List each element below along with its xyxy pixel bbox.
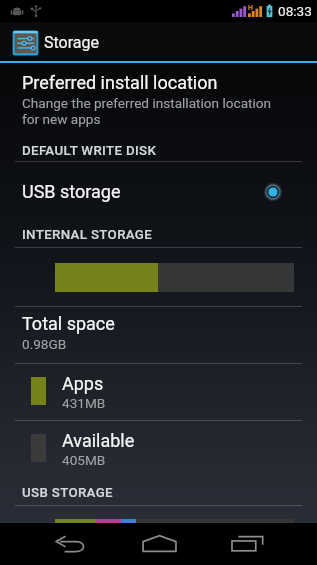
staticText: INTERNAL STORAGE: [22, 227, 153, 243]
staticText: Preferred install location: [22, 72, 218, 93]
button[interactable]: Storage: [0, 22, 317, 61]
button[interactable]: Back: [26, 523, 116, 565]
button[interactable]: Total space: [0, 306, 317, 364]
staticText: 08:33: [278, 3, 312, 19]
staticText: 405MB: [62, 452, 106, 468]
staticText: DEFAULT WRITE DISK: [22, 143, 157, 159]
button[interactable]: Apps: [0, 364, 317, 420]
button[interactable]: Recent apps: [203, 523, 293, 565]
staticText: Change the preferred installation locati…: [22, 95, 272, 127]
button[interactable]: Available: [0, 421, 317, 477]
staticText: 431MB: [62, 395, 106, 411]
staticText: H: [248, 4, 253, 12]
staticText: Available: [62, 430, 135, 451]
button[interactable]: Home: [114, 523, 204, 565]
staticText: Total space: [22, 313, 115, 334]
staticText: USB STORAGE: [22, 485, 113, 501]
button[interactable]: [0, 66, 317, 126]
staticText: Storage: [44, 33, 99, 52]
staticText: Apps: [62, 373, 104, 394]
staticText: 0.98GB: [22, 336, 67, 352]
staticText: USB storage: [22, 181, 121, 202]
button[interactable]: USB storage: [0, 163, 317, 216]
